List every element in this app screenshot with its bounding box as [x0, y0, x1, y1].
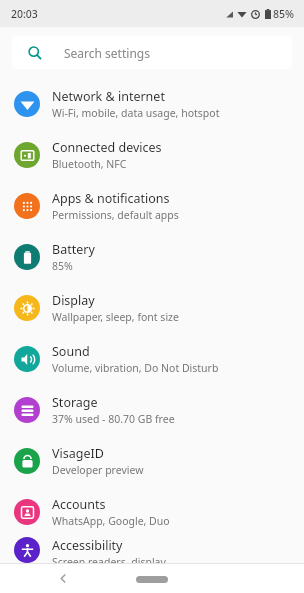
button[interactable]: Display — [0, 282, 304, 333]
button[interactable]: Apps & notifications — [0, 180, 304, 231]
staticText: 37% used - 80.70 GB free — [52, 412, 175, 426]
staticText: Accessibility — [52, 537, 123, 554]
button[interactable]: Sound — [0, 333, 304, 384]
button[interactable]: Storage — [0, 384, 304, 435]
button[interactable]: Accessibility — [0, 537, 304, 563]
staticText: Wallpaper, sleep, font size — [52, 310, 179, 324]
staticText: 85% — [52, 259, 73, 273]
staticText: Permissions, default apps — [52, 208, 179, 222]
staticText: 20:03 — [11, 7, 38, 21]
button[interactable]: Home — [124, 568, 180, 590]
staticText: Screen readers, display — [52, 555, 166, 563]
button[interactable]: Back — [48, 564, 78, 593]
button[interactable]: Network & internet — [0, 78, 304, 129]
button[interactable]: Search settings — [12, 36, 292, 69]
button[interactable]: Connected devices — [0, 129, 304, 180]
staticText: Search settings — [64, 45, 150, 61]
button[interactable]: Battery — [0, 231, 304, 282]
staticText: VisageID — [52, 445, 104, 462]
staticText: Battery — [52, 241, 95, 258]
staticText: Apps & notifications — [52, 190, 170, 207]
staticText: Volume, vibration, Do Not Disturb — [52, 361, 219, 375]
button[interactable]: VisageID — [0, 435, 304, 486]
staticText: Display — [52, 292, 95, 309]
staticText: 85% — [273, 7, 294, 21]
staticText: Sound — [52, 343, 90, 360]
staticText: Connected devices — [52, 139, 162, 156]
button[interactable]: Accounts — [0, 486, 304, 537]
staticText: Bluetooth, NFC — [52, 157, 127, 171]
staticText: Network & internet — [52, 88, 165, 105]
staticText: WhatsApp, Google, Duo — [52, 514, 170, 528]
staticText: Developer preview — [52, 463, 144, 477]
staticText: Accounts — [52, 496, 106, 513]
staticText: Storage — [52, 394, 98, 411]
staticText: Wi-Fi, mobile, data usage, hotspot — [52, 106, 220, 120]
